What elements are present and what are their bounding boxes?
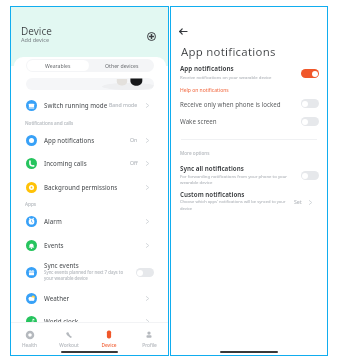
button[interactable]: Back [175, 23, 191, 39]
staticText: Other devices [105, 62, 139, 69]
button[interactable]: App notifications [10, 129, 169, 152]
button[interactable]: Health [10, 324, 49, 354]
staticText: On [130, 136, 138, 143]
button[interactable]: Alarm [10, 210, 169, 233]
staticText: Incoming calls [44, 159, 87, 167]
staticText: Wake screen [180, 117, 217, 125]
staticText: For forwarding notifications from your p… [180, 173, 288, 185]
button[interactable]: Toggle off [301, 171, 319, 180]
staticText: Off [130, 159, 138, 166]
staticText: Device [101, 342, 117, 349]
button[interactable]: World clock [10, 310, 169, 333]
button[interactable]: Workout [49, 324, 89, 354]
staticText: Sync all notifications [180, 164, 244, 172]
staticText: Background permissions [44, 183, 118, 191]
button[interactable]: Sync events [10, 257, 169, 287]
staticText: Apps [25, 201, 37, 207]
staticText: More options [180, 150, 210, 156]
staticText: App notifications [44, 136, 95, 144]
staticText: App notifications [181, 44, 276, 60]
button[interactable]: Switch running mode [10, 94, 169, 117]
staticText: Notifications and calls [25, 120, 74, 126]
button[interactable]: Toggle off [136, 268, 154, 277]
staticText: Device [21, 24, 52, 38]
button[interactable]: Toggle off [301, 171, 319, 180]
staticText: Events [44, 241, 64, 249]
button[interactable]: Toggle on [301, 69, 319, 78]
button[interactable]: Toggle on [301, 69, 319, 78]
staticText: World clock [44, 317, 79, 325]
staticText: Sync events planned for next 7 days to y… [44, 269, 124, 281]
button[interactable]: Toggle off [301, 99, 319, 108]
staticText: Workout [59, 342, 79, 349]
button[interactable]: Weather [10, 287, 169, 310]
button[interactable]: Profile [129, 324, 169, 354]
button[interactable]: Device [89, 324, 129, 354]
staticText: App notifications [180, 64, 234, 73]
button[interactable]: Wearables [27, 60, 89, 71]
button[interactable]: Events [10, 234, 169, 257]
button[interactable]: Toggle off [301, 117, 319, 126]
button[interactable]: Incoming calls [10, 152, 169, 175]
button[interactable]: Toggle off [301, 99, 319, 108]
button[interactable] [26, 78, 154, 90]
staticText: Sync events [44, 261, 79, 269]
staticText: Health [22, 342, 37, 349]
staticText: Weather [44, 294, 70, 302]
button[interactable]: Background permissions [10, 176, 169, 199]
staticText: Set [294, 198, 302, 205]
staticText: Band mode [109, 101, 138, 108]
staticText: Custom notifications [180, 190, 245, 198]
staticText: Receive only when phone is locked [180, 100, 281, 108]
staticText: Choose which apps' notifications will be… [180, 199, 286, 211]
staticText: Switch running mode [44, 101, 108, 109]
button[interactable]: Toggle off [301, 117, 319, 126]
staticText: Profile [142, 342, 157, 349]
staticText: Add device [21, 36, 50, 43]
staticText: Wearables [45, 62, 71, 69]
button[interactable]: Add device [144, 29, 159, 44]
staticText: Receive notifications on your wearable d… [180, 74, 272, 80]
staticText: Help on notifications [180, 87, 229, 94]
button[interactable]: Other devices [90, 59, 154, 72]
staticText: Alarm [44, 217, 62, 225]
